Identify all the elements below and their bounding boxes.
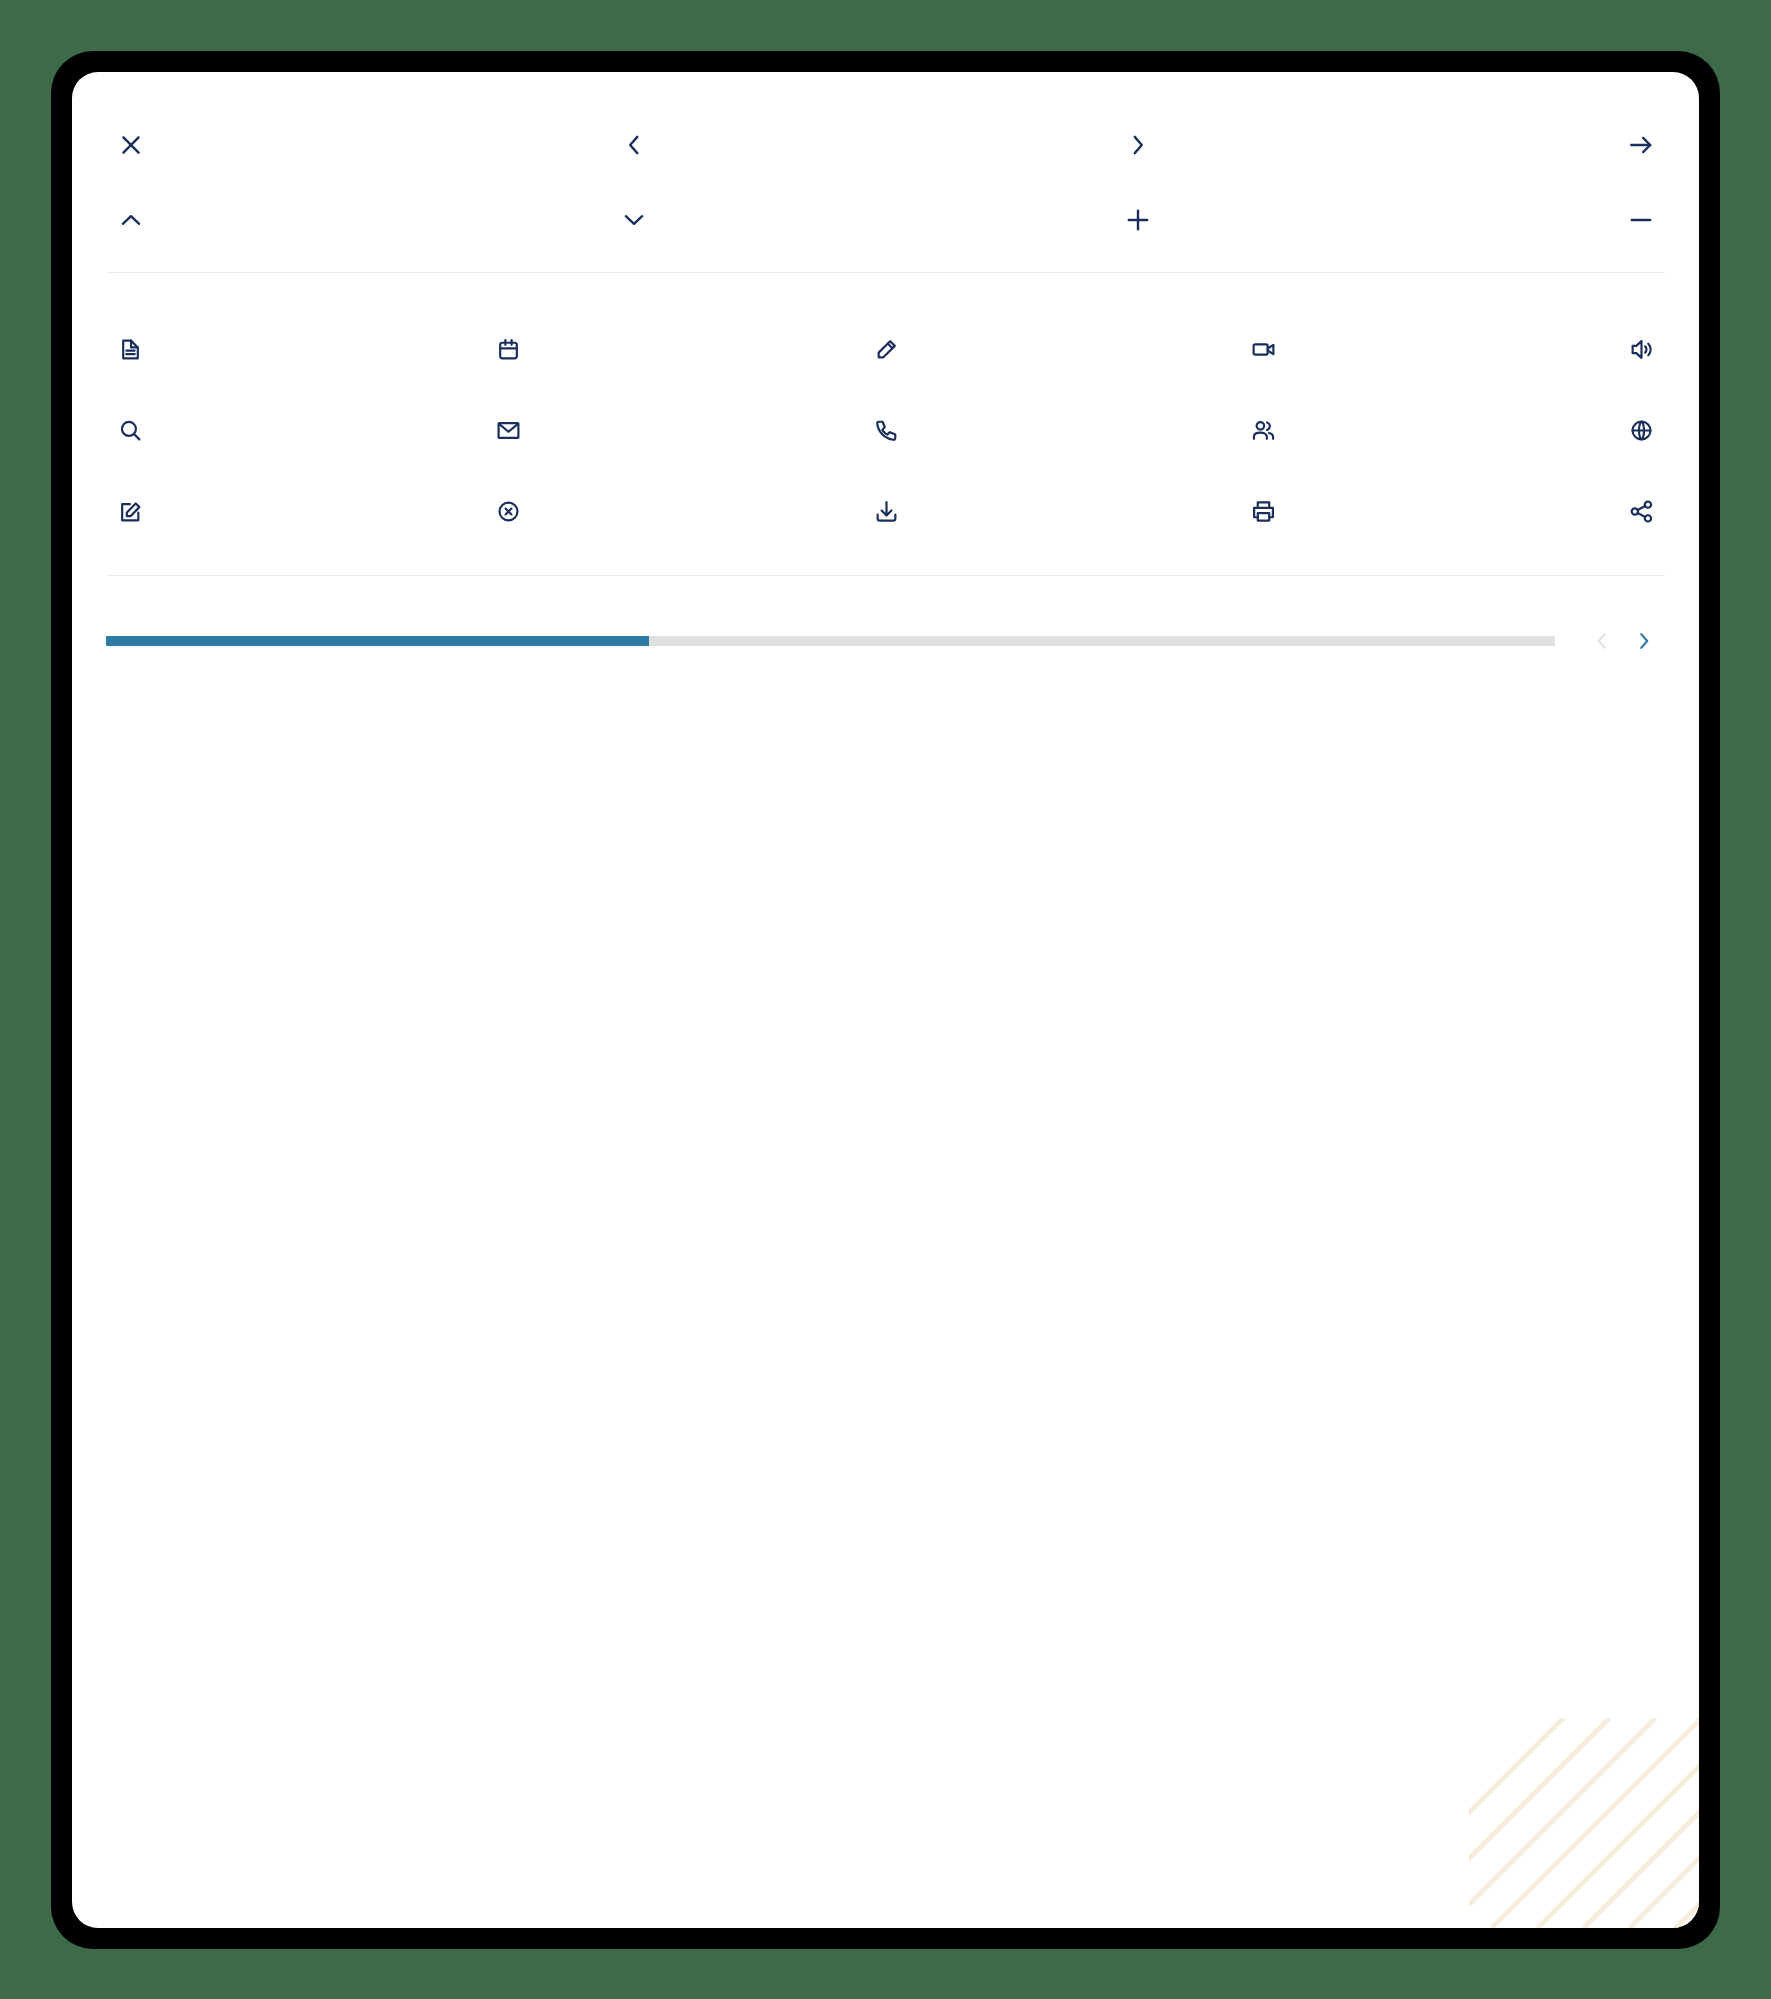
button[interactable]: Contacts	[1239, 406, 1287, 454]
button[interactable]: Share	[1617, 487, 1665, 535]
button[interactable]: Call	[862, 406, 910, 454]
button[interactable]: Language	[1617, 406, 1665, 454]
button[interactable]: Search	[106, 406, 154, 454]
button[interactable]: Expand	[609, 195, 658, 244]
button[interactable]: Calendar	[484, 325, 532, 373]
button[interactable]: Previous	[609, 120, 658, 169]
button[interactable]: Edit	[862, 325, 910, 373]
button[interactable]: Mail	[484, 406, 532, 454]
button[interactable]: Download	[862, 487, 910, 535]
button[interactable]: Forward	[1616, 120, 1665, 169]
button[interactable]: Cancel	[484, 487, 532, 535]
button[interactable]: Document	[106, 325, 154, 373]
button[interactable]: Collapse	[106, 195, 155, 244]
button[interactable]: Close	[106, 120, 155, 169]
button[interactable]: Next page	[1623, 620, 1665, 662]
button[interactable]: Add	[1113, 195, 1162, 244]
button[interactable]: Previous page	[1581, 620, 1623, 662]
button[interactable]: Next	[1113, 120, 1162, 169]
button[interactable]: Print	[1239, 487, 1287, 535]
button[interactable]: Video call	[1239, 325, 1287, 373]
button[interactable]: Remove	[1616, 195, 1665, 244]
button[interactable]: Volume	[1617, 325, 1665, 373]
button[interactable]: Compose	[106, 487, 154, 535]
